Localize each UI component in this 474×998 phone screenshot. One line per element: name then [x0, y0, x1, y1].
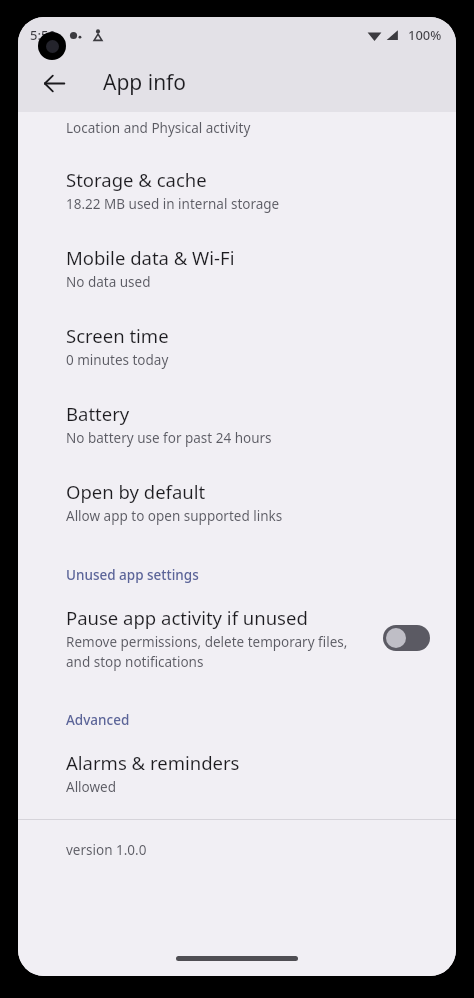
staticText: Advanced	[66, 711, 130, 729]
staticText: version 1.0.0	[66, 841, 147, 859]
staticText: Alarms & reminders	[66, 750, 240, 775]
button[interactable]: Storage & cache	[18, 167, 456, 213]
button[interactable]: Pause app activity if unused	[18, 605, 456, 671]
staticText: 0 minutes today	[66, 351, 169, 369]
staticText: Screen time	[66, 323, 169, 348]
staticText: Location and Physical activity	[66, 119, 251, 137]
staticText: 18.22 MB used in internal storage	[66, 195, 280, 213]
button[interactable]: Pause app activity if unused toggle	[379, 621, 434, 655]
staticText: No data used	[66, 273, 151, 291]
button[interactable]: Back	[32, 61, 76, 105]
button[interactable]: Mobile data & Wi-Fi	[18, 245, 456, 291]
staticText: Open by default	[66, 479, 206, 504]
staticText: Mobile data & Wi-Fi	[66, 245, 235, 270]
staticText: Unused app settings	[66, 566, 199, 584]
button[interactable]: Battery	[18, 401, 456, 447]
staticText: 5:50	[30, 26, 56, 44]
staticText: Allow app to open supported links	[66, 507, 283, 525]
staticText: Battery	[66, 401, 130, 426]
staticText: Storage & cache	[66, 167, 207, 192]
staticText: App info	[103, 68, 187, 97]
staticText: Pause app activity if unused	[66, 605, 308, 630]
staticText: 100%	[408, 26, 442, 44]
staticText: Allowed	[66, 778, 117, 796]
button[interactable]: Screen time	[18, 323, 456, 369]
button[interactable]: Open by default	[18, 479, 456, 525]
button[interactable]: Alarms & reminders	[18, 750, 456, 796]
staticText: Remove permissions, delete temporary fil…	[66, 633, 348, 671]
staticText: No battery use for past 24 hours	[66, 429, 272, 447]
